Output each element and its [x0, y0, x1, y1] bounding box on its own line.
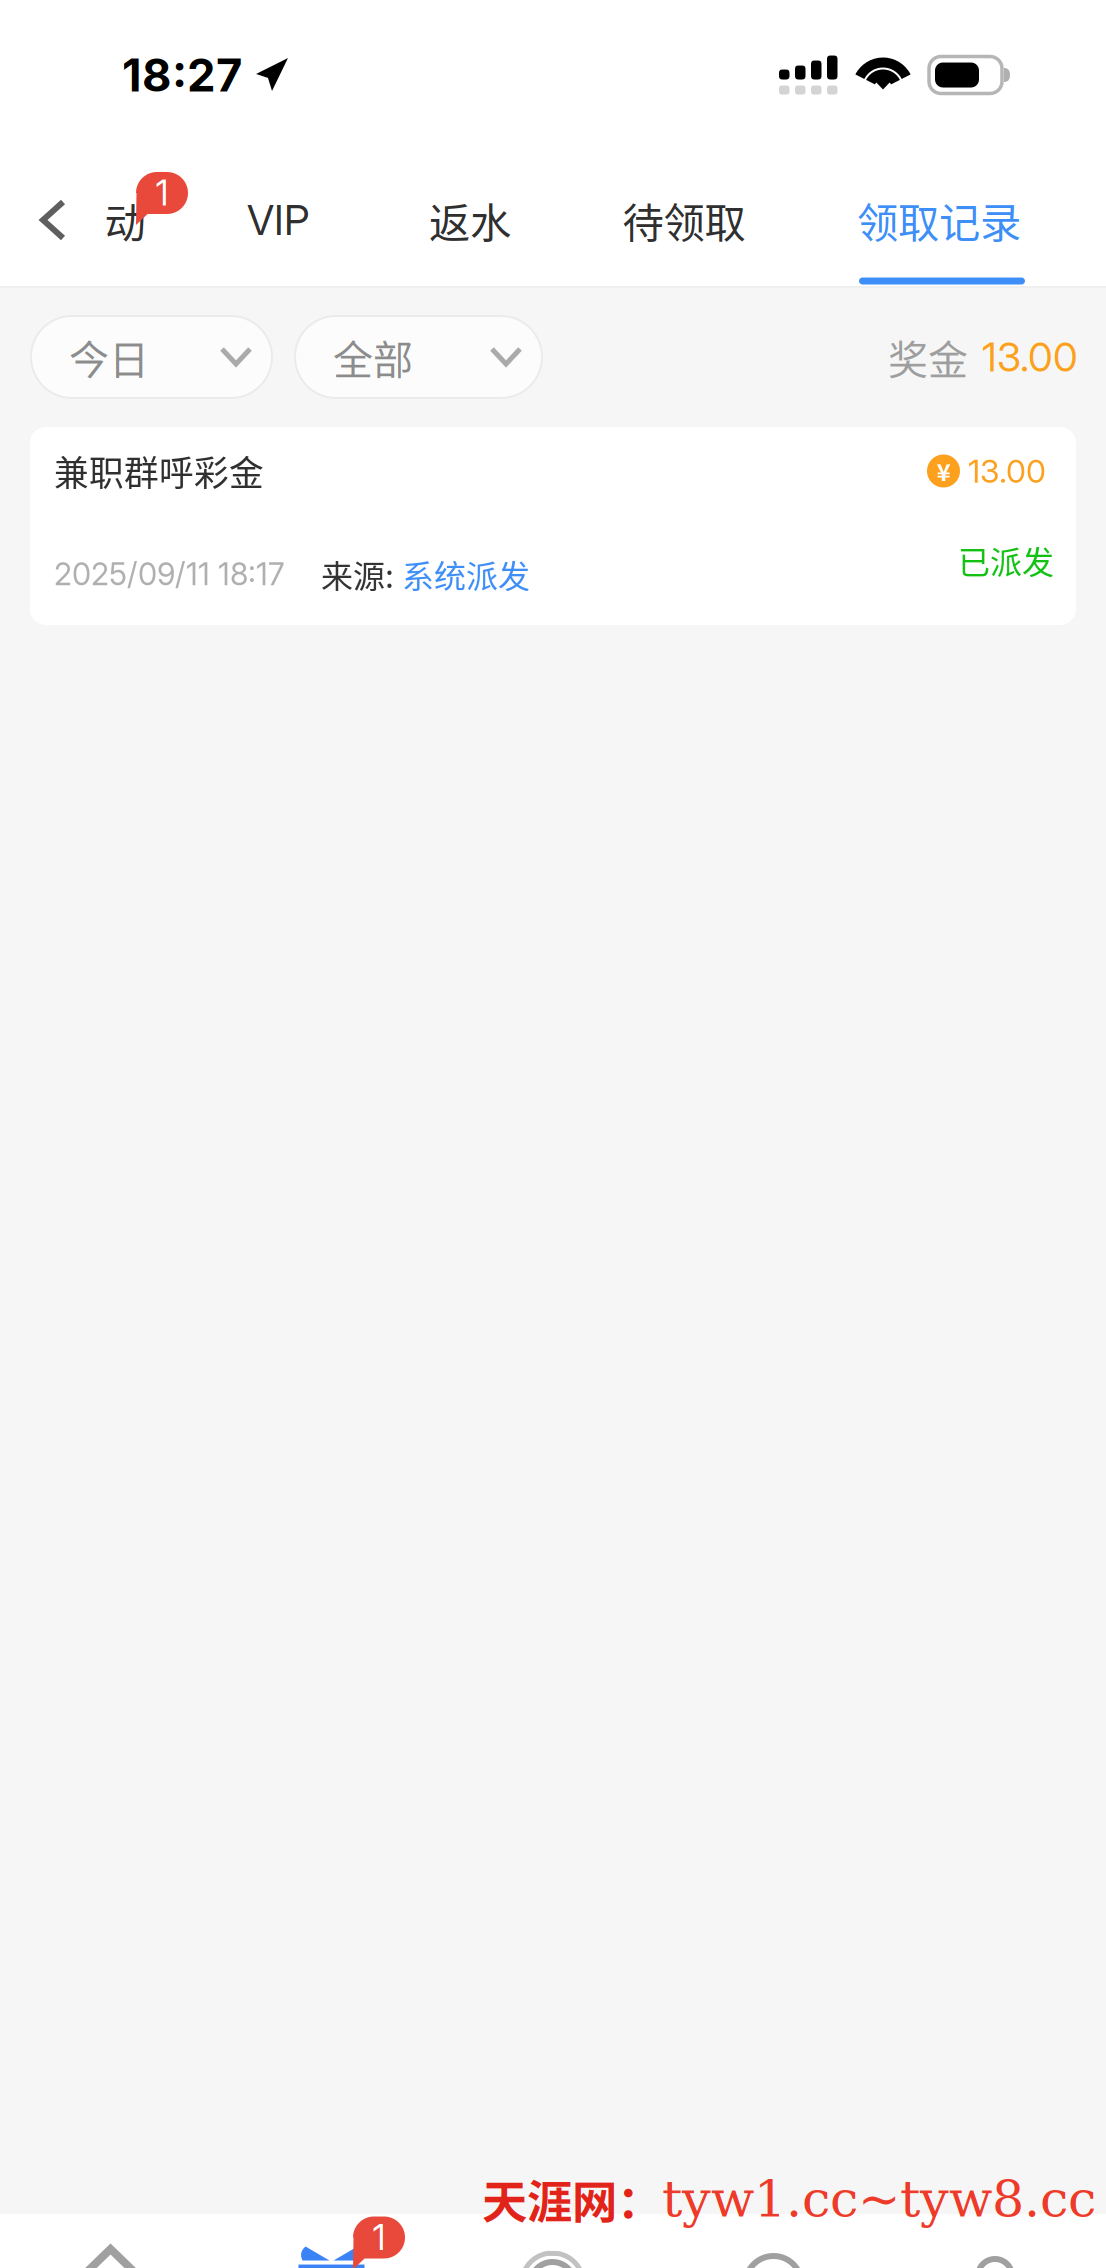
staticText: tyw1.cc~tyw8.cc	[662, 2169, 1096, 2228]
staticText: 系统派发	[402, 551, 530, 597]
button[interactable]: 兼职群呼彩金	[30, 427, 1076, 625]
button[interactable]: Messages	[663, 2214, 884, 2268]
button[interactable]: 今日	[31, 316, 272, 398]
button[interactable]: 全部	[295, 316, 542, 398]
staticText: 全部	[333, 328, 413, 386]
button[interactable]: Promotions	[221, 2214, 442, 2268]
staticText: VIP	[247, 195, 309, 245]
staticText: 待领取	[622, 190, 745, 250]
staticText: 1	[372, 2216, 385, 2258]
staticText: 18:27	[122, 48, 242, 102]
button[interactable]: Home	[0, 2214, 221, 2268]
staticText: 动	[104, 190, 145, 250]
button[interactable]: Back	[0, 172, 88, 268]
staticText: ¥	[936, 454, 950, 488]
button[interactable]: 领取记录	[838, 172, 1040, 268]
staticText: 天涯网：	[482, 2166, 662, 2232]
button[interactable]: Profile	[884, 2214, 1106, 2268]
button[interactable]: Support	[442, 2214, 663, 2268]
staticText: 兼职群呼彩金	[54, 446, 264, 496]
staticText: 返水	[429, 190, 511, 250]
button[interactable]: VIP	[224, 172, 332, 268]
staticText: 领取记录	[857, 190, 1021, 250]
staticText: 今日	[69, 328, 149, 386]
button[interactable]: 待领取	[602, 172, 766, 268]
staticText: 13.00	[982, 333, 1078, 381]
staticText: 已派发	[958, 537, 1054, 583]
staticText: 13.00	[968, 452, 1046, 490]
staticText: 1	[155, 172, 168, 214]
staticText: 奖金	[888, 328, 968, 386]
button[interactable]: 返水	[410, 172, 530, 268]
button[interactable]: 动	[88, 172, 162, 268]
staticText: 来源:	[321, 551, 394, 597]
staticText: 2025/09/11 18:17	[54, 555, 285, 592]
